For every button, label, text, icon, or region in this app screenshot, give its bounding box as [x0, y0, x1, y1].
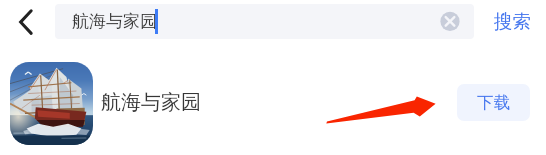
button[interactable]: Clear text: [438, 10, 462, 34]
staticText: 航海与家园: [101, 90, 201, 115]
button[interactable]: 搜索: [483, 4, 541, 39]
button[interactable]: App icon: [10, 62, 93, 145]
button[interactable]: 航海与家园: [101, 87, 201, 117]
staticText: 搜索: [494, 10, 531, 33]
button[interactable]: 航海与家园: [55, 4, 474, 39]
staticText: 航海与家园: [72, 11, 157, 32]
staticText: 下载: [477, 92, 510, 113]
button[interactable]: Back: [7, 5, 43, 41]
button[interactable]: 下载: [457, 84, 530, 121]
